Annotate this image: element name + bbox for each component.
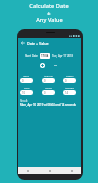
button[interactable]: 10 bbox=[20, 90, 33, 95]
staticText: Minutes bbox=[65, 86, 75, 89]
staticText: Date + Value bbox=[27, 41, 49, 46]
staticText: Mon, Apr 10 2019 at 08:04 and 14 seconds bbox=[20, 103, 76, 107]
button[interactable]: Back bbox=[19, 39, 26, 46]
staticText: Calculate Date bbox=[29, 2, 69, 10]
button[interactable]: 0 bbox=[20, 78, 33, 83]
button[interactable]: Recents bbox=[69, 168, 74, 173]
button[interactable]: Home bbox=[47, 168, 52, 173]
button[interactable]: Back bbox=[25, 168, 30, 173]
staticText: Any Value bbox=[36, 16, 63, 24]
button[interactable]: 0 bbox=[63, 78, 76, 83]
staticText: Months bbox=[44, 74, 53, 77]
staticText: 17/04 bbox=[41, 54, 49, 58]
button[interactable]: 0 bbox=[42, 78, 55, 83]
staticText: Tue, Apr 17 2018 bbox=[52, 54, 74, 58]
staticText: 0 bbox=[44, 79, 46, 83]
staticText: 0 bbox=[22, 79, 24, 83]
button[interactable]: 17/04 bbox=[40, 53, 50, 59]
staticText: Days bbox=[24, 86, 30, 89]
button[interactable]: Add bbox=[40, 63, 45, 68]
staticText: 10 bbox=[22, 91, 25, 95]
button[interactable]: Subtract bbox=[53, 63, 58, 68]
staticText: ± bbox=[47, 9, 51, 17]
staticText: Hours bbox=[45, 86, 52, 89]
staticText: 0 bbox=[44, 91, 46, 95]
staticText: 0 bbox=[65, 79, 67, 83]
staticText: 14 bbox=[65, 91, 68, 95]
button[interactable]: 14 bbox=[63, 90, 76, 95]
staticText: Weeks bbox=[66, 74, 74, 77]
staticText: Start Date bbox=[25, 54, 38, 58]
staticText: Years bbox=[23, 74, 30, 77]
staticText: Result bbox=[20, 99, 28, 103]
button[interactable]: 0 bbox=[42, 90, 55, 95]
